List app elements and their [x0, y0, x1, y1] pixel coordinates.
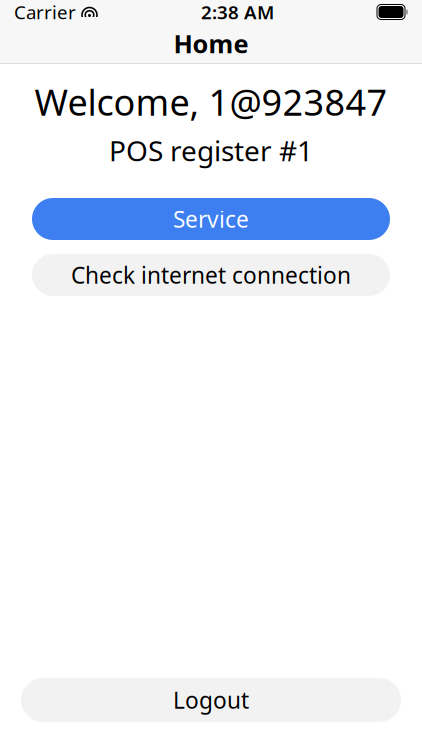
button[interactable]: Service — [32, 198, 390, 240]
button[interactable]: Check internet connection — [32, 254, 390, 296]
staticText: Home — [173, 27, 248, 60]
staticText: Logout — [173, 685, 249, 715]
staticText: 2:38 AM — [201, 0, 274, 24]
staticText: Service — [173, 204, 249, 234]
staticText: POS register #1 — [109, 132, 313, 169]
staticText: Check internet connection — [71, 260, 351, 290]
button[interactable]: Logout — [21, 678, 401, 722]
staticText: Welcome, 1@923847 — [34, 78, 387, 126]
staticText: Carrier — [14, 0, 76, 24]
